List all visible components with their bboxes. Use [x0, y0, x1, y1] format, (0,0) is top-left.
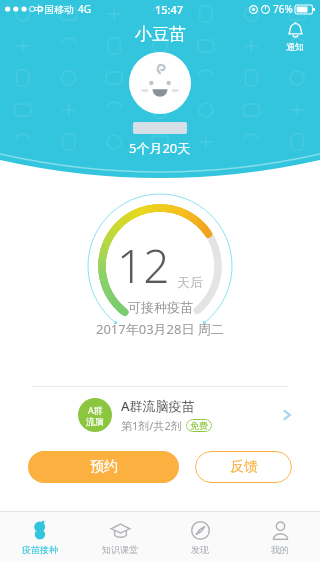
staticText: 天后 [177, 274, 203, 290]
staticText: 可接种疫苗 [128, 299, 193, 315]
button[interactable]: 我的 [240, 512, 320, 562]
staticText: 76% [273, 2, 293, 16]
staticText: 第1剂/共2剂 [121, 418, 182, 433]
button[interactable]: 疫苗接种 [0, 512, 80, 562]
staticText: A群流脑疫苗 [121, 397, 195, 415]
staticText: 通知 [286, 41, 304, 52]
button[interactable]: 发现 [160, 512, 240, 562]
staticText: 知识课堂 [102, 544, 138, 555]
staticText: 预约 [90, 458, 118, 476]
staticText: 4G [78, 2, 91, 16]
staticText: 12 [117, 234, 170, 297]
staticText: 免费 [190, 420, 208, 431]
button[interactable]: 反馈 [195, 451, 292, 483]
staticText: 2017年03月28日 周二 [96, 320, 224, 338]
staticText: 流脑 [86, 416, 104, 427]
button[interactable]: A群 [0, 387, 320, 443]
staticText: 反馈 [230, 458, 258, 476]
staticText: 小豆苗 [135, 24, 186, 45]
button[interactable]: 知识课堂 [80, 512, 160, 562]
staticText: 疫苗接种 [22, 544, 58, 555]
button[interactable]: 预约 [28, 451, 179, 483]
staticText: 15:47 [155, 2, 184, 17]
staticText: 发现 [191, 544, 209, 555]
button[interactable]: 通知 [280, 20, 310, 54]
staticText: 中国移动 [34, 3, 74, 16]
other: 查看详情 [280, 408, 294, 422]
staticText: A群 [88, 404, 103, 416]
staticText: 5个月20天 [129, 139, 191, 157]
staticText: 我的 [271, 544, 289, 555]
button[interactable]: 宝宝头像 [129, 52, 191, 114]
